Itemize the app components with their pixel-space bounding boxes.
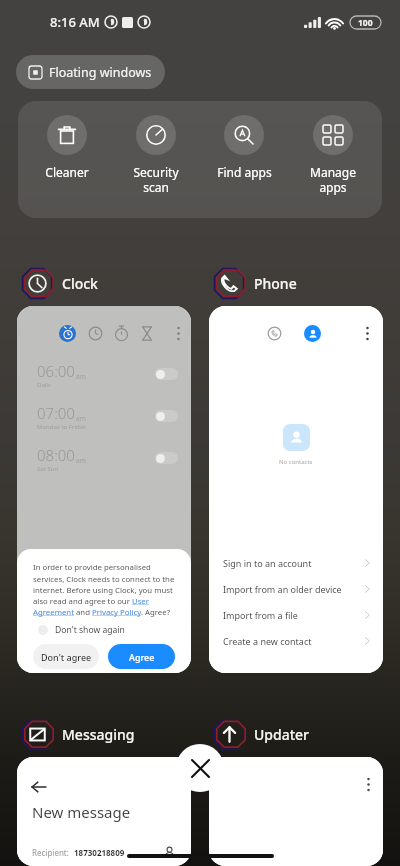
staticText: Monday to Friday (37, 423, 87, 429)
staticText: Don't agree (41, 651, 92, 663)
staticText: Import from a file (223, 609, 298, 621)
staticText: Sign in to an account (223, 557, 312, 569)
staticText: Sat Sun (37, 465, 59, 471)
button[interactable]: No contacts (209, 306, 383, 673)
button[interactable]: Find apps (205, 101, 283, 218)
staticText: 18730218809 (74, 847, 125, 858)
button[interactable]: Phone (209, 267, 297, 300)
staticText: 8:16 AM (50, 13, 100, 31)
staticText: Don't show again (55, 624, 125, 636)
staticText: Recipient: (32, 847, 69, 858)
staticText: 08:00 (37, 445, 75, 465)
button[interactable]: Agree (108, 644, 175, 669)
staticText: Find apps (217, 164, 272, 180)
button[interactable]: 06:00 (17, 361, 191, 387)
staticText: Clock (62, 274, 98, 293)
button[interactable]: Don't show again (33, 624, 125, 636)
staticText: Floating windows (49, 64, 152, 81)
staticText: am (76, 456, 86, 465)
staticText: Manage apps (310, 164, 356, 195)
staticText: 100 (358, 17, 373, 29)
button[interactable]: Clock (17, 267, 98, 300)
button[interactable]: 06:00 (17, 306, 191, 673)
button[interactable]: Sign in to an account (209, 550, 383, 576)
button[interactable]: Import from a file (209, 602, 383, 628)
staticText: 07:00 (37, 403, 75, 423)
staticText: am (76, 372, 86, 381)
button[interactable]: Close all (176, 744, 224, 792)
button[interactable]: Messaging (17, 718, 135, 751)
button[interactable]: Create a new contact (209, 628, 383, 654)
staticText: 06:00 (37, 361, 75, 381)
button[interactable]: Import from an older device (209, 576, 383, 602)
staticText: New message (32, 802, 131, 822)
staticText: In order to provide personalised service… (33, 562, 175, 617)
button[interactable]: 07:00 (17, 403, 191, 429)
button[interactable]: Cleaner (28, 101, 106, 218)
staticText: Daily (37, 381, 51, 387)
button[interactable]: New message (17, 757, 191, 866)
button[interactable]: Floating windows (16, 55, 165, 89)
staticText: Messaging (62, 725, 135, 744)
button[interactable]: Manage apps (294, 101, 372, 218)
button[interactable]: 08:00 (17, 445, 191, 471)
button[interactable]: Don't agree (33, 644, 99, 669)
staticText: Cleaner (45, 164, 89, 180)
button[interactable]: Security scan (117, 101, 195, 218)
button[interactable] (209, 757, 383, 866)
staticText: Updater (254, 725, 310, 744)
staticText: Create a new contact (223, 635, 312, 647)
staticText: No contacts (279, 458, 313, 466)
staticText: Phone (254, 274, 297, 293)
staticText: Import from an older device (223, 583, 342, 595)
button[interactable]: Updater (209, 718, 310, 751)
staticText: am (76, 414, 86, 423)
staticText: Agree (129, 651, 155, 663)
staticText: Security scan (133, 164, 179, 195)
